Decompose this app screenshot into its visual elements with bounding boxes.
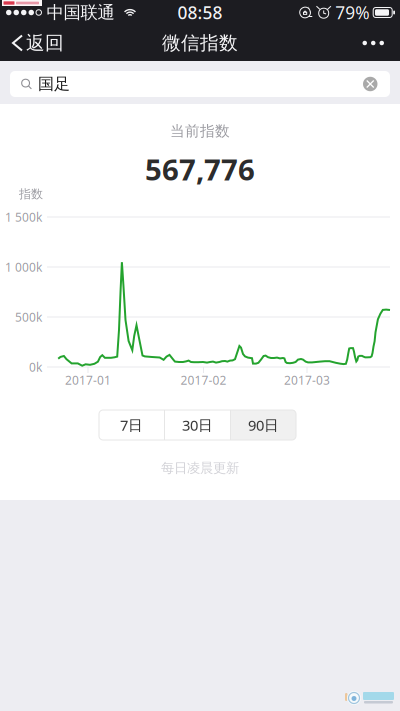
staticText: 返回 bbox=[26, 31, 64, 54]
staticText: 1 000k bbox=[5, 259, 42, 275]
staticText: 2017-01 bbox=[65, 372, 111, 388]
button[interactable]: 30日 bbox=[165, 410, 230, 440]
staticText: 2017-03 bbox=[284, 372, 330, 388]
staticText: 79% bbox=[335, 1, 369, 24]
staticText: 当前指数 bbox=[170, 122, 230, 140]
staticText: 中国联通 bbox=[46, 2, 114, 23]
staticText: 08:58 bbox=[177, 1, 222, 24]
button[interactable]: 国足 bbox=[0, 61, 400, 104]
staticText: 1 500k bbox=[5, 209, 42, 225]
staticText: 500k bbox=[15, 309, 42, 325]
button[interactable]: 90日 bbox=[231, 410, 296, 440]
staticText: 指数 bbox=[19, 187, 43, 201]
staticText: 每日凌晨更新 bbox=[161, 460, 239, 476]
staticText: 30日 bbox=[182, 415, 213, 435]
staticText: 0k bbox=[29, 359, 42, 375]
staticText: 90日 bbox=[248, 415, 279, 435]
staticText: 567,776 bbox=[145, 149, 255, 188]
button[interactable]: 返回 bbox=[0, 25, 77, 61]
staticText: 国足 bbox=[38, 74, 70, 94]
button[interactable]: 7日 bbox=[99, 410, 164, 440]
staticText: 微信指数 bbox=[162, 31, 238, 54]
staticText: 2017-02 bbox=[180, 372, 226, 388]
staticText: 7日 bbox=[120, 415, 143, 435]
button[interactable]: More options bbox=[348, 25, 400, 61]
